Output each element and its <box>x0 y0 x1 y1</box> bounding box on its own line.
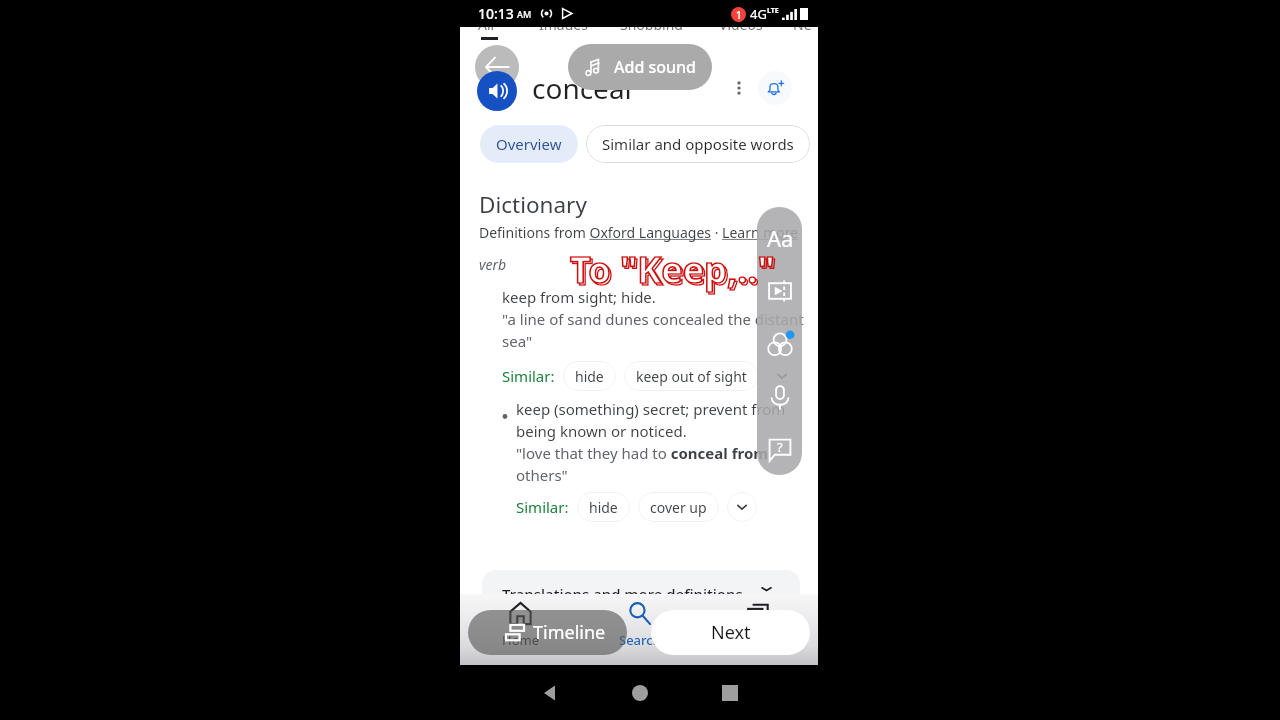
staticText: keep out of sight <box>636 367 747 386</box>
staticText: Shopping <box>620 27 683 30</box>
button[interactable]: Home <box>460 600 580 650</box>
button[interactable]: Help <box>759 429 801 471</box>
staticText: ? <box>777 438 783 456</box>
button[interactable]: Filters <box>759 323 801 365</box>
staticText: keep from sight; hide. <box>502 287 656 307</box>
staticText: Dictionary <box>479 189 587 220</box>
staticText: 10:13 <box>478 4 514 23</box>
staticText: To "Keep,.." <box>570 245 775 294</box>
button[interactable]: Search <box>580 600 699 650</box>
staticText: Videos <box>719 27 763 30</box>
staticText: 1 <box>736 8 742 22</box>
staticText: News <box>793 27 818 30</box>
button[interactable]: Back <box>475 45 519 89</box>
button[interactable]: Similar and opposite words <box>586 125 810 163</box>
button[interactable]: Home <box>610 665 670 720</box>
staticText: Aa <box>767 223 794 253</box>
staticText: All <box>478 27 495 30</box>
button[interactable]: Translations and more definitions <box>482 570 800 594</box>
staticText: Tabs <box>745 631 773 649</box>
staticText: keep (something) secret; prevent from be… <box>516 399 808 442</box>
staticText: conceal <box>532 69 632 107</box>
button[interactable]: Text size <box>759 217 801 259</box>
staticText: Similar and opposite words <box>602 134 794 154</box>
button[interactable]: Tabs <box>699 600 818 650</box>
button[interactable]: Add sound <box>568 44 712 90</box>
button[interactable]: Show more similar words <box>767 361 797 391</box>
button[interactable]: Recents <box>700 665 760 720</box>
staticText: Timeline <box>533 620 606 645</box>
button[interactable]: cover up <box>638 492 719 522</box>
staticText: Images <box>539 27 588 30</box>
staticText: To "Keep,.." <box>572 247 777 296</box>
button[interactable]: hide <box>563 361 616 391</box>
button[interactable]: More options <box>724 73 754 103</box>
staticText: Search <box>619 631 661 649</box>
staticText: Overview <box>496 134 562 154</box>
button[interactable]: Video <box>759 270 801 312</box>
button[interactable]: Back <box>520 665 580 720</box>
button[interactable]: hide <box>577 492 630 522</box>
button[interactable]: Pronounce <box>477 71 517 111</box>
staticText: Home <box>502 631 539 649</box>
button[interactable]: Overview <box>480 125 578 163</box>
button[interactable]: Next <box>651 610 810 655</box>
staticText: "love that they had to conceal from othe… <box>516 443 808 486</box>
button[interactable]: Show more similar words <box>727 492 757 522</box>
button[interactable]: Add notification <box>758 71 792 105</box>
staticText: To "Keep,.." <box>570 245 775 294</box>
button[interactable]: Timeline <box>468 610 627 655</box>
staticText: Add sound <box>614 56 697 78</box>
staticText: Next <box>711 620 751 645</box>
staticText: AM <box>517 8 532 20</box>
button[interactable]: keep out of sight <box>624 361 759 391</box>
staticText: hide <box>589 498 618 517</box>
staticText: 4G <box>750 5 767 23</box>
staticText: hide <box>575 367 604 386</box>
staticText: Similar: <box>502 366 555 386</box>
staticText: "a line of sand dunes concealed the dist… <box>502 309 814 352</box>
staticText: verb <box>479 255 507 274</box>
staticText: Similar: <box>516 497 569 517</box>
button[interactable]: Voice search <box>759 376 801 418</box>
staticText: LTE <box>767 6 779 16</box>
staticText: Definitions from Oxford Languages · Lear… <box>479 223 799 242</box>
staticText: Translations and more definitions <box>502 584 743 594</box>
staticText: cover up <box>650 498 707 517</box>
